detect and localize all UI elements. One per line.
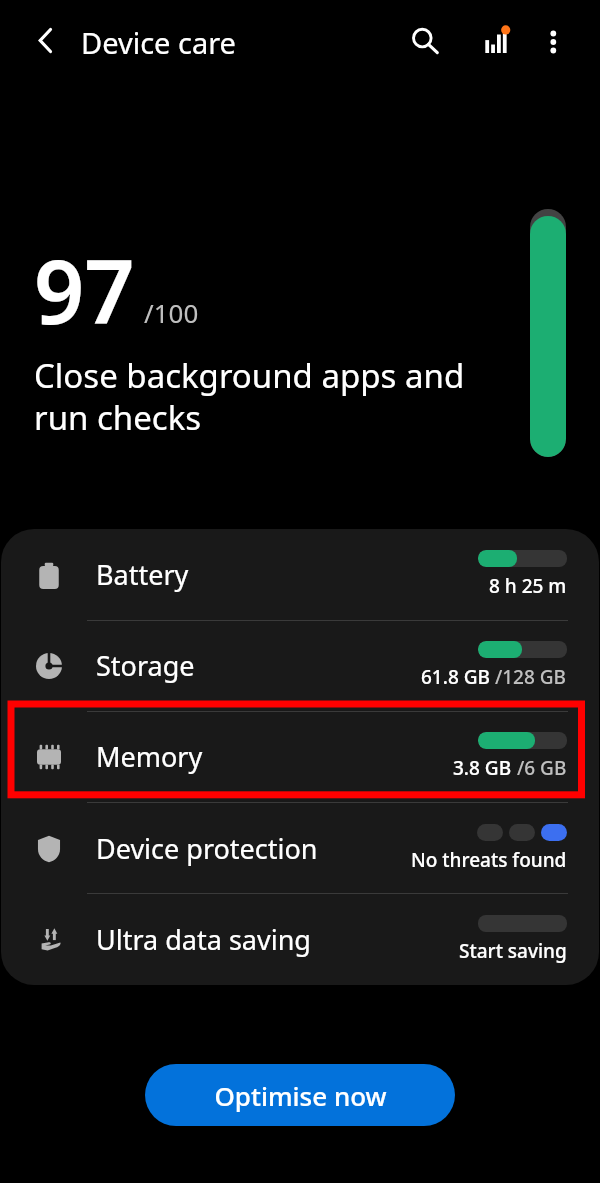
button[interactable]: Battery [1,529,599,620]
staticText: /6 GB [512,755,567,781]
button[interactable]: Search [399,12,451,64]
staticText: Optimise now [214,1078,387,1113]
button[interactable]: Storage [1,620,599,711]
staticText: Ultra data saving [96,921,311,958]
staticText: 3.8 GB [453,755,512,781]
staticText: 8 h 25 m [489,573,567,599]
button[interactable]: Usage statistics [470,16,522,68]
staticText: Storage [96,647,195,684]
staticText: 97 [34,230,135,350]
button[interactable]: Ultra data saving [1,894,599,985]
staticText: Start saving [459,938,567,964]
staticText: Memory [96,738,203,775]
button[interactable]: Device protection [1,803,599,894]
staticText: Device protection [96,830,318,867]
staticText: /128 GB [490,664,567,690]
button[interactable]: Back [22,15,74,67]
staticText: 61.8 GB [421,664,490,690]
staticText: No threats found [411,847,567,873]
staticText: Device care [81,23,236,62]
button[interactable]: Optimise now [145,1064,455,1126]
staticText: /100 [144,295,199,330]
staticText: Close background apps and run checks [34,353,465,440]
staticText: Battery [96,556,189,593]
button[interactable]: Memory [1,711,599,802]
button[interactable]: More options [527,16,579,68]
